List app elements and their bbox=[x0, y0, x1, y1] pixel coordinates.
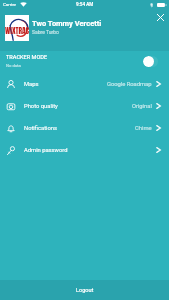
staticText: 9:54 AM bbox=[76, 2, 94, 7]
staticText: WIXTRAC bbox=[5, 25, 29, 36]
staticText: Carrier bbox=[3, 2, 17, 7]
button[interactable]: Maps bbox=[7, 73, 161, 95]
staticText: Two Tommy Vercetti bbox=[32, 19, 102, 28]
button[interactable]: TRACKER MODE bbox=[0, 51, 169, 73]
staticText: No data bbox=[6, 63, 21, 68]
staticText: Logout bbox=[76, 287, 94, 294]
staticText: Original bbox=[132, 103, 152, 110]
button[interactable]: Admin password bbox=[7, 139, 161, 161]
staticText: TRACKER MODE bbox=[6, 54, 48, 61]
staticText: Sabre Turbo bbox=[32, 29, 59, 35]
staticText: Photo quality bbox=[24, 103, 58, 110]
button[interactable]: Photo quality bbox=[7, 95, 161, 117]
button[interactable]: Close bbox=[151, 8, 169, 26]
button[interactable]: Notifications bbox=[7, 117, 161, 139]
staticText: Notifications bbox=[24, 125, 57, 132]
button[interactable]: Logout bbox=[0, 280, 169, 300]
button[interactable]: Tracker mode toggle bbox=[143, 56, 158, 67]
staticText: Chime bbox=[135, 125, 152, 132]
staticText: Google Roadmap bbox=[107, 81, 152, 88]
staticText: Admin password bbox=[24, 147, 68, 154]
staticText: Maps bbox=[24, 81, 39, 88]
